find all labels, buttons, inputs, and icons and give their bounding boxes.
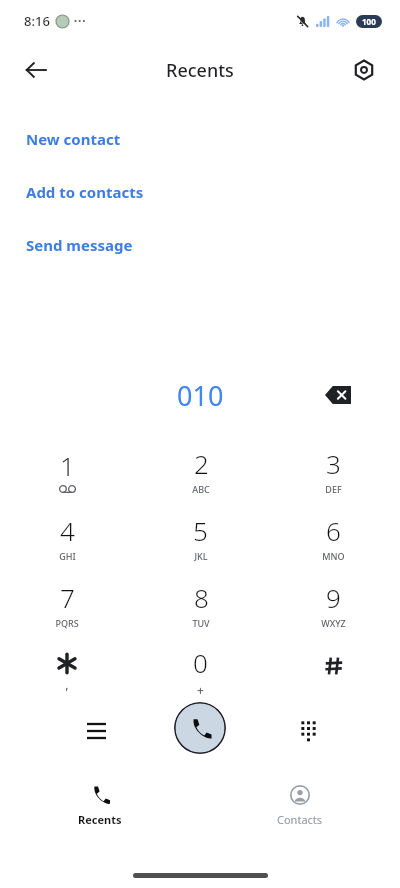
- button[interactable]: 8: [134, 571, 267, 638]
- staticText: TUV: [192, 617, 210, 629]
- staticText: JKL: [194, 550, 208, 562]
- button[interactable]: Contacts: [255, 785, 345, 845]
- staticText: 9: [326, 580, 341, 615]
- button[interactable]: 1: [0, 437, 134, 504]
- button[interactable]: Dialpad: [286, 708, 330, 752]
- button[interactable]: [267, 638, 400, 705]
- staticText: Contacts: [277, 812, 323, 827]
- staticText: MNO: [322, 550, 345, 562]
- button[interactable]: 5: [134, 504, 267, 571]
- staticText: 6: [326, 513, 341, 548]
- button[interactable]: 0: [134, 638, 267, 705]
- button[interactable]: Settings: [340, 46, 388, 94]
- staticText: 8:16: [24, 12, 50, 30]
- staticText: Add to contacts: [26, 182, 144, 202]
- staticText: WXYZ: [321, 617, 346, 629]
- staticText: 010: [177, 377, 224, 414]
- button[interactable]: Menu: [74, 708, 118, 752]
- button[interactable]: Add to contacts: [0, 165, 400, 218]
- staticText: 4: [60, 513, 75, 548]
- staticText: New contact: [26, 129, 121, 149]
- button[interactable]: 4: [0, 504, 134, 571]
- button[interactable]: 2: [134, 437, 267, 504]
- button[interactable]: Call: [174, 702, 226, 754]
- staticText: DEF: [325, 483, 342, 495]
- staticText: Recents: [166, 58, 234, 83]
- staticText: PQRS: [55, 617, 79, 629]
- button[interactable]: 7: [0, 571, 134, 638]
- staticText: Recents: [78, 812, 122, 827]
- staticText: 5: [193, 513, 208, 548]
- staticText: 7: [60, 580, 75, 615]
- staticText: Send message: [26, 235, 133, 255]
- staticText: 3: [326, 446, 341, 481]
- button[interactable]: Back: [12, 46, 60, 94]
- button[interactable]: 3: [267, 437, 400, 504]
- button[interactable]: Recents: [55, 785, 145, 845]
- staticText: ABC: [192, 483, 210, 495]
- button[interactable]: 9: [267, 571, 400, 638]
- staticText: 8: [194, 580, 209, 615]
- button[interactable]: Send message: [0, 218, 400, 271]
- staticText: ,: [65, 676, 69, 692]
- button[interactable]: New contact: [0, 112, 400, 165]
- staticText: 2: [194, 446, 209, 481]
- staticText: 100: [362, 16, 376, 27]
- staticText: 1: [60, 448, 75, 483]
- staticText: +: [197, 682, 204, 698]
- button[interactable]: 6: [267, 504, 400, 571]
- staticText: 0: [193, 645, 208, 680]
- staticText: GHI: [59, 550, 76, 562]
- button[interactable]: ,: [0, 638, 134, 705]
- button[interactable]: Backspace: [316, 373, 360, 417]
